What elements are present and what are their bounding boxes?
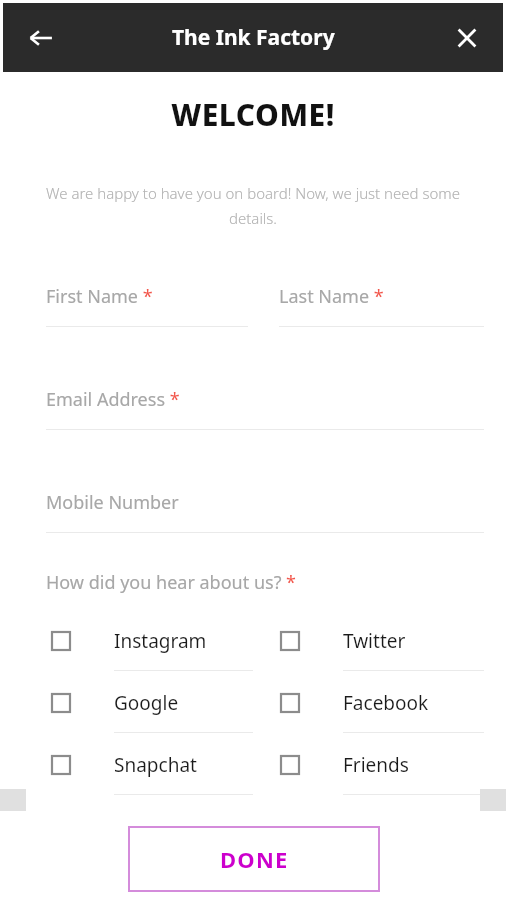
button[interactable]: Twitter [281, 628, 484, 690]
staticText: Email Address * [46, 387, 180, 412]
staticText: How did you hear about us? * [46, 570, 297, 595]
staticText: The Ink Factory [172, 23, 335, 52]
staticText: Mobile Number [46, 490, 179, 515]
button[interactable]: Email Address * [46, 387, 484, 430]
staticText: We are happy to have you on board! Now, … [44, 183, 462, 228]
button[interactable]: Back [15, 12, 67, 64]
staticText: Instagram [114, 628, 207, 654]
staticText: First Name * [46, 284, 153, 309]
staticText: Friends [343, 752, 409, 778]
staticText: Google [114, 690, 179, 716]
button[interactable]: First Name * [46, 284, 248, 327]
staticText: Last Name * [279, 284, 384, 309]
button[interactable]: Close [441, 12, 493, 64]
button[interactable]: Snapchat [52, 752, 253, 814]
staticText: Snapchat [114, 752, 197, 778]
button[interactable]: Last Name * [279, 284, 484, 327]
button[interactable]: DONE [128, 826, 380, 892]
staticText: Facebook [343, 690, 429, 716]
button[interactable]: Mobile Number [46, 490, 484, 533]
button[interactable]: Friends [281, 752, 484, 814]
staticText: WELCOME! [0, 94, 506, 135]
staticText: Twitter [343, 628, 406, 654]
button[interactable]: Facebook [281, 690, 484, 752]
button[interactable]: Instagram [52, 628, 253, 690]
staticText: DONE [220, 844, 289, 874]
button[interactable]: Google [52, 690, 253, 752]
